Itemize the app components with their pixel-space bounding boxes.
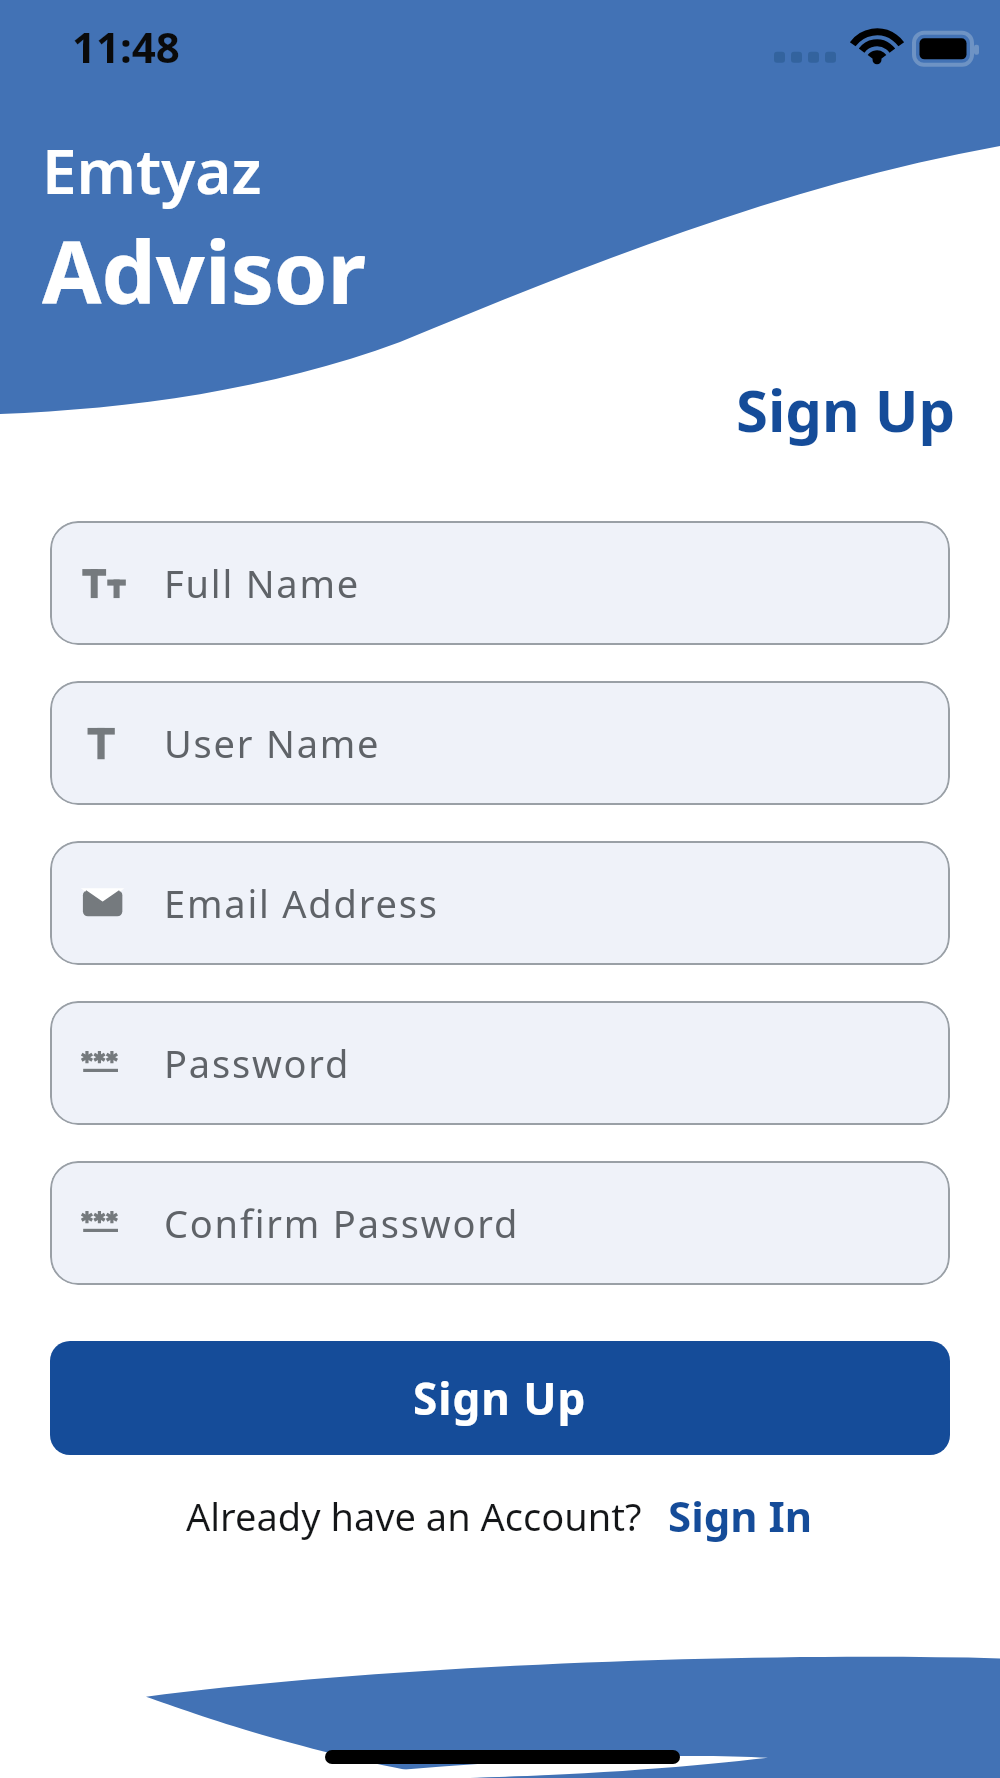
button[interactable]: Sign In — [666, 1487, 815, 1544]
staticText: Emtyaz — [42, 128, 262, 212]
staticText: Password — [164, 1037, 351, 1089]
staticText: Sign Up — [736, 370, 956, 449]
staticText: Sign In — [668, 1487, 813, 1544]
other: Signal, Wi-Fi and battery status — [774, 22, 964, 70]
staticText: User Name — [164, 717, 381, 769]
staticText: Email Address — [164, 877, 439, 929]
staticText: Advisor — [42, 212, 367, 329]
button[interactable]: Password — [50, 1001, 950, 1125]
staticText: Already have an Account? — [186, 1490, 642, 1542]
button[interactable]: Email Address — [50, 841, 950, 965]
staticText: Confirm Password — [164, 1197, 520, 1249]
staticText: Sign Up — [413, 1368, 587, 1428]
button[interactable]: Confirm Password — [50, 1161, 950, 1285]
button[interactable]: Sign Up — [50, 1341, 950, 1455]
button[interactable]: User Name — [50, 681, 950, 805]
button[interactable]: Full Name — [50, 521, 950, 645]
staticText: Full Name — [164, 557, 361, 609]
staticText: 11:48 — [72, 18, 180, 75]
